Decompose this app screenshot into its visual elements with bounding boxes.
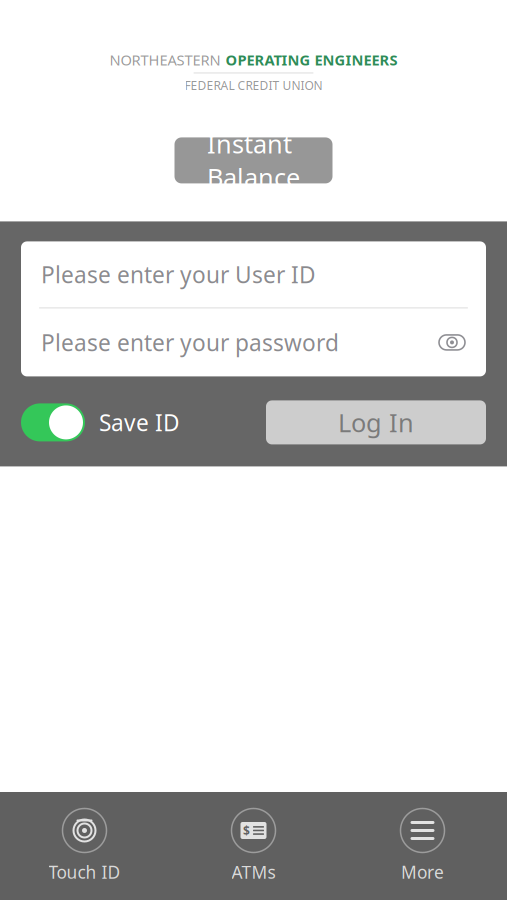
staticText: NORTHEASTERN (109, 50, 220, 69)
staticText: Please enter your password (41, 327, 339, 357)
button[interactable]: Save ID (21, 403, 180, 441)
staticText: Instant Balance (207, 127, 300, 194)
staticText: Log In (338, 406, 414, 439)
staticText: ATMs (231, 860, 275, 883)
staticText: More (401, 860, 444, 883)
staticText: $ (243, 822, 250, 838)
staticText: Save ID (99, 407, 180, 437)
staticText: OPERATING ENGINEERS (225, 50, 397, 69)
staticText: Touch ID (48, 860, 120, 883)
button[interactable]: Please enter your password (21, 308, 486, 376)
button[interactable]: Touch ID (0, 801, 169, 891)
staticText: FEDERAL CREDIT UNION (184, 77, 322, 93)
staticText: Please enter your User ID (41, 259, 316, 289)
button[interactable]: Log In (266, 400, 486, 444)
button[interactable]: More (338, 801, 507, 891)
button[interactable]: Instant Balance (174, 137, 332, 183)
button[interactable]: Please enter your User ID (21, 241, 486, 307)
button[interactable]: $ (169, 801, 338, 891)
